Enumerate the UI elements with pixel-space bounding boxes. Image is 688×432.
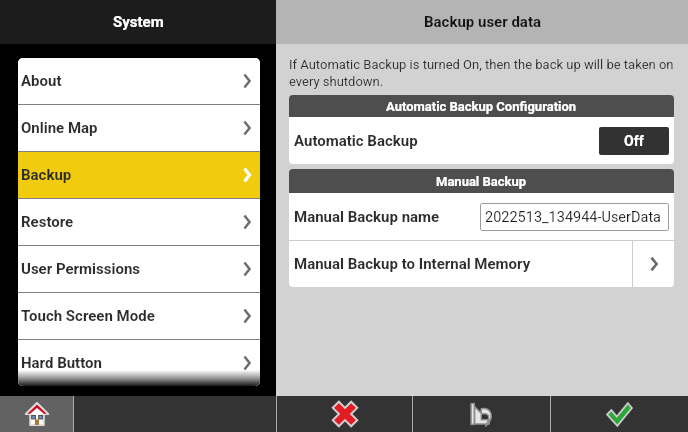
staticText: Restore xyxy=(21,213,74,231)
staticText: 2022513_134944-UserData xyxy=(485,209,662,226)
staticText: About xyxy=(21,72,62,90)
button[interactable]: Backup xyxy=(18,152,260,198)
button[interactable]: Touch Screen Mode xyxy=(18,293,260,339)
staticText: Online Map xyxy=(21,119,98,137)
button[interactable]: Confirm xyxy=(551,396,688,432)
button[interactable]: 2022513_134944-UserData xyxy=(480,203,669,231)
button[interactable]: Restore xyxy=(18,199,260,245)
staticText: System xyxy=(113,13,164,31)
staticText: Backup xyxy=(21,166,72,184)
staticText: Automatic Backup Configuration xyxy=(386,99,577,114)
button[interactable]: Home xyxy=(0,396,73,432)
staticText: User Permissions xyxy=(21,260,141,278)
button[interactable]: Cancel xyxy=(277,396,412,432)
button[interactable]: About xyxy=(18,58,260,104)
button[interactable]: Off xyxy=(599,127,669,155)
staticText: Manual Backup name xyxy=(294,208,440,226)
staticText: Touch Screen Mode xyxy=(21,307,155,325)
button[interactable]: User Permissions xyxy=(18,246,260,292)
staticText: Manual Backup xyxy=(436,174,527,189)
staticText: Automatic Backup xyxy=(294,132,418,150)
button[interactable]: Online Map xyxy=(18,105,260,151)
staticText: Hard Button xyxy=(21,354,102,372)
button[interactable]: Hard Button xyxy=(18,340,260,386)
staticText: If Automatic Backup is turned On, then t… xyxy=(289,57,674,90)
staticText: Off xyxy=(624,133,644,149)
button[interactable]: Undo xyxy=(413,396,550,432)
button[interactable]: Manual Backup to Internal Memory xyxy=(289,241,674,287)
staticText: Backup user data xyxy=(424,13,541,31)
staticText: Manual Backup to Internal Memory xyxy=(294,255,531,273)
